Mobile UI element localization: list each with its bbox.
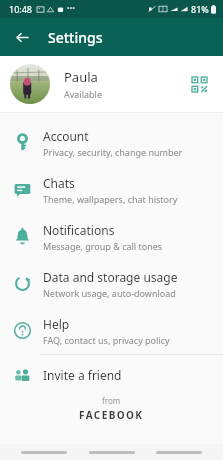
staticText: ••• [67, 4, 75, 14]
staticText: from [102, 395, 121, 406]
staticText: Privacy, security, change number [43, 146, 183, 158]
staticText: 81% [191, 3, 209, 15]
button[interactable]: Invite a friend [0, 355, 223, 395]
staticText: Network usage, auto-download [43, 287, 176, 299]
button[interactable]: Paula [0, 56, 223, 112]
staticText: FAQ, contact us, privacy policy [43, 334, 170, 346]
button[interactable]: Back [8, 23, 36, 51]
button[interactable]: Help [0, 307, 223, 354]
button[interactable]: Navigation [156, 451, 202, 454]
staticText: 10:48 [9, 3, 33, 15]
staticText: Notifications [43, 222, 115, 238]
button[interactable]: Chats [0, 166, 223, 213]
button[interactable]: Data and storage usage [0, 260, 223, 307]
button[interactable]: Notifications [0, 213, 223, 260]
staticText: Available [64, 88, 102, 100]
staticText: Account [43, 128, 89, 144]
button[interactable]: Navigation [89, 451, 135, 454]
staticText: Chats [43, 175, 75, 191]
staticText: Data and storage usage [43, 269, 178, 285]
staticText: FACEBOOK [79, 408, 144, 422]
staticText: Paula [64, 68, 98, 86]
button[interactable]: QR code [185, 70, 213, 98]
staticText: Settings [48, 28, 103, 47]
button[interactable]: Account [0, 119, 223, 166]
staticText: Help [43, 316, 70, 332]
staticText: Invite a friend [43, 367, 122, 383]
button[interactable]: Navigation [21, 451, 67, 454]
staticText: Message, group & call tones [43, 240, 163, 252]
staticText: Theme, wallpapers, chat history [43, 193, 178, 205]
